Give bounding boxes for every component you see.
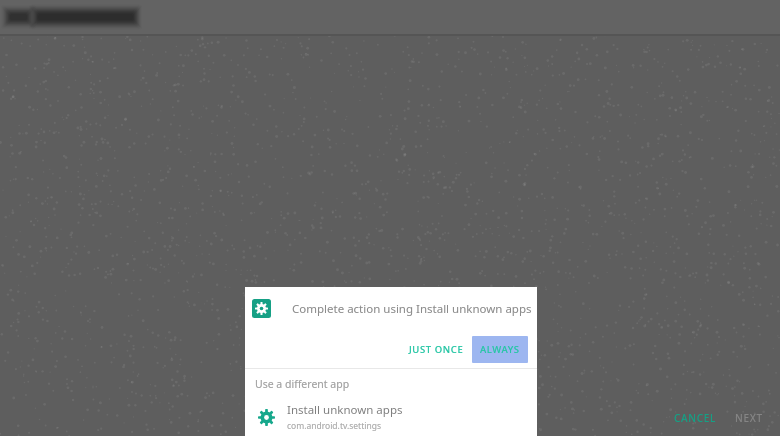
button[interactable]: NEXT [726, 407, 772, 429]
button[interactable]: JUST ONCE [403, 338, 470, 361]
staticText: JUST ONCE [409, 343, 464, 356]
staticText: Use a different app [255, 377, 350, 391]
staticText: ALWAYS [480, 343, 520, 356]
other: Install unknown apps icon [258, 409, 275, 426]
staticText: com.android.tv.settings [287, 420, 381, 432]
staticText: Install unknown apps [287, 402, 403, 418]
staticText: Complete action using Install unknown ap… [292, 301, 532, 317]
button[interactable]: ALWAYS [472, 336, 528, 363]
button[interactable]: Install unknown apps icon [245, 398, 537, 436]
staticText: NEXT [735, 411, 763, 425]
button[interactable]: CANCEL [665, 407, 726, 429]
staticText: CANCEL [674, 411, 717, 425]
